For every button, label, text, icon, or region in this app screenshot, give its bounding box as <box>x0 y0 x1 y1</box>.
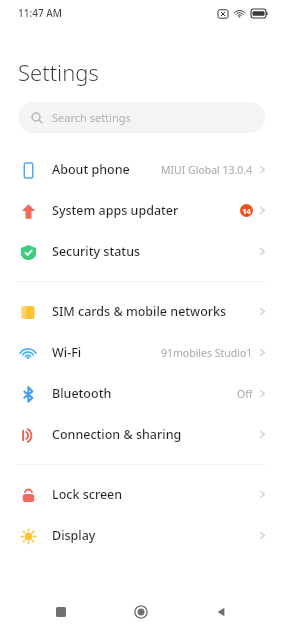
button[interactable]: System apps updater <box>0 190 283 231</box>
staticText: MIUI Global 13.0.4 <box>161 163 253 177</box>
button[interactable]: Lock screen <box>0 474 283 515</box>
staticText: About phone <box>52 161 130 178</box>
staticText: 14 <box>242 206 251 216</box>
staticText: Off <box>237 387 253 401</box>
button[interactable]: Display <box>0 515 283 556</box>
staticText: Bluetooth <box>52 385 112 402</box>
staticText: Connection & sharing <box>52 426 182 443</box>
staticText: Display <box>52 527 96 544</box>
staticText: Search settings <box>52 110 131 125</box>
staticText: Lock screen <box>52 486 123 503</box>
staticText: 91mobiles Studio1 <box>161 346 253 360</box>
staticText: Wi-Fi <box>52 344 82 361</box>
staticText: Settings <box>18 57 99 87</box>
button[interactable]: Wi-Fi <box>0 332 283 373</box>
button[interactable]: Recent apps <box>43 594 79 630</box>
button[interactable]: About phone <box>0 149 283 190</box>
staticText: 11:47 AM <box>18 6 62 20</box>
button[interactable]: Connection & sharing <box>0 414 283 455</box>
button[interactable]: Bluetooth <box>0 373 283 414</box>
button[interactable]: Home <box>123 594 159 630</box>
staticText: Security status <box>52 243 141 260</box>
button[interactable]: Back <box>203 594 239 630</box>
staticText: SIM cards & mobile networks <box>52 303 227 320</box>
button[interactable]: SIM cards & mobile networks <box>0 291 283 332</box>
button[interactable]: Security status <box>0 231 283 272</box>
staticText: System apps updater <box>52 202 179 219</box>
button[interactable]: Search settings <box>18 102 265 133</box>
